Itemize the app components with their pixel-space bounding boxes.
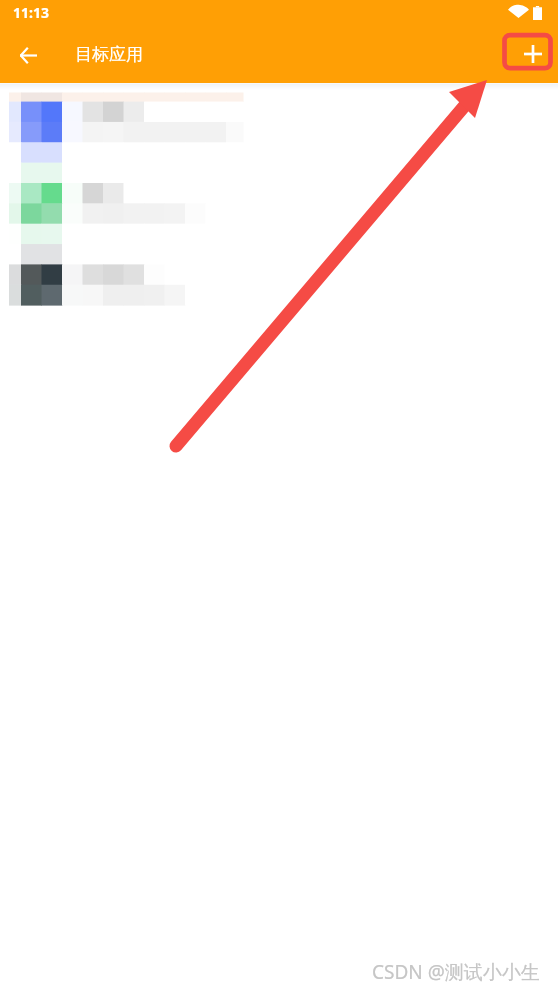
staticText: 11:13 [13, 3, 49, 22]
button[interactable]: Add [511, 35, 551, 75]
staticText: 目标应用 [75, 44, 143, 65]
staticText: CSDN @测试小小生 [372, 959, 540, 985]
button[interactable]: Back [12, 39, 44, 71]
